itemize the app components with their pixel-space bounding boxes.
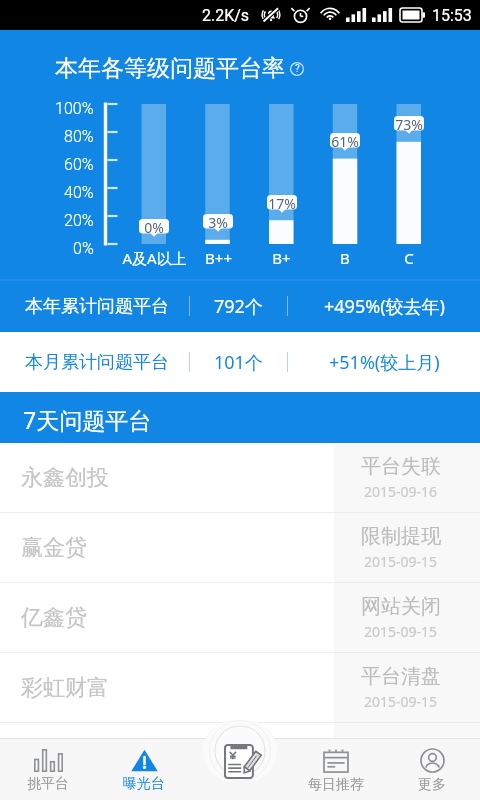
staticText: 73% [394,115,424,134]
staticText: 80% [64,127,94,146]
button[interactable]: 每日推荐 [288,738,384,800]
staticText: 100% [55,99,94,118]
staticText: 赢金贷 [21,534,87,562]
staticText: 3% [203,213,233,232]
button[interactable]: 亿鑫贷 [0,583,480,652]
staticText: 792个 [214,294,263,319]
staticText: 2015-09-15 [364,692,438,711]
staticText: 40% [64,183,94,202]
staticText: +495%(较去年) [324,294,445,319]
button[interactable]: 本月累计问题平台 [0,332,480,392]
button[interactable]: 更多 [384,738,480,800]
staticText: +51%(较上月) [329,350,440,375]
staticText: 7天问题平台 [23,404,152,435]
staticText: 更多 [418,776,446,794]
staticText: A及A以上 [122,248,187,268]
button[interactable]: 本年累计问题平台 [0,280,480,332]
button[interactable]: 挑平台 [0,738,96,800]
staticText: 本年各等级问题平台率 [55,54,285,83]
staticText: 彩虹财富 [21,674,109,702]
button[interactable]: 赢金贷 [0,513,480,582]
staticText: 亿鑫贷 [21,604,87,632]
staticText: 61% [330,132,360,151]
staticText: 0% [139,218,169,237]
button[interactable]: 曝光台 [96,738,192,800]
staticText: 0% [73,239,94,258]
staticText: 本月累计问题平台 [25,351,169,374]
staticText: 17% [267,194,297,213]
staticText: 15:53 [432,6,472,25]
staticText: 2015-09-15 [364,622,438,641]
staticText: 2015-09-15 [364,552,438,571]
button[interactable]: 彩虹财富 [0,653,480,722]
staticText: 本年累计问题平台 [25,295,169,318]
staticText: 网站关闭 [361,594,441,619]
button[interactable]: 记一笔 [203,720,277,782]
staticText: C [404,248,414,268]
button[interactable]: 永鑫创投 [0,443,480,512]
staticText: B [340,248,350,268]
staticText: 平台清盘 [361,664,441,689]
staticText: 每日推荐 [308,776,364,794]
staticText: 101个 [214,350,263,375]
staticText: 20% [64,211,94,230]
staticText: B++ [205,248,232,268]
staticText: 60% [64,155,94,174]
staticText: 挑平台 [27,775,69,793]
staticText: 2.2K/s [202,6,250,25]
staticText: 平台失联 [361,454,441,479]
staticText: 曝光台 [123,775,165,793]
staticText: ? [295,63,300,75]
staticText: 限制提现 [361,524,441,549]
staticText: B+ [272,248,291,268]
staticText: 2015-09-16 [364,482,438,501]
staticText: 永鑫创投 [21,464,109,492]
